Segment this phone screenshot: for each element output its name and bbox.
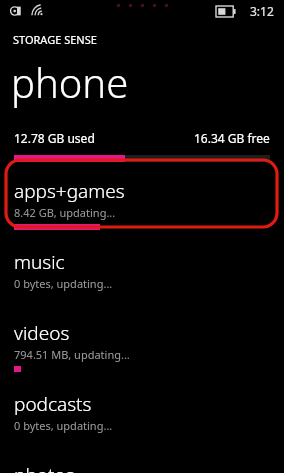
staticText: 12.78 GB used: [14, 130, 95, 146]
button[interactable]: apps+games: [0, 178, 284, 230]
staticText: 0 bytes, updating...: [14, 276, 113, 291]
button[interactable]: photos: [0, 462, 284, 473]
staticText: podcasts: [14, 391, 92, 417]
staticText: phone: [11, 55, 129, 109]
staticText: apps+games: [14, 178, 125, 204]
staticText: 8.42 GB, updating...: [14, 205, 116, 220]
staticText: 0 bytes, updating...: [14, 418, 113, 433]
staticText: 16.34 GB free: [194, 130, 270, 146]
staticText: videos: [14, 320, 70, 346]
staticText: STORAGE SENSE: [13, 32, 97, 47]
button[interactable]: podcasts: [0, 391, 284, 443]
button[interactable]: music: [0, 249, 284, 301]
button[interactable]: videos: [0, 320, 284, 372]
staticText: photos: [14, 462, 75, 473]
other: Highlighted apps and games row: [0, 0, 284, 473]
staticText: 794.51 MB, updating...: [14, 347, 130, 362]
staticText: music: [14, 249, 65, 275]
staticText: 3:12: [250, 3, 274, 19]
